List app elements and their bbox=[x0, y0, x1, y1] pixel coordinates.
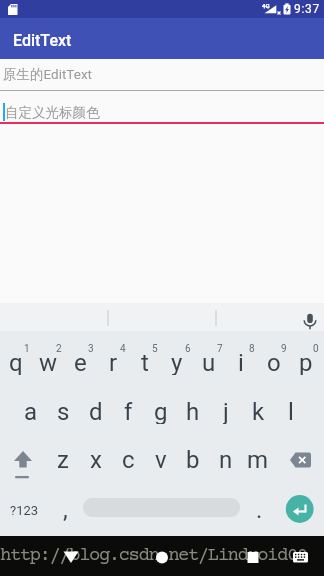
staticText: b bbox=[186, 446, 200, 472]
button[interactable] bbox=[0, 303, 324, 331]
staticText: 6 bbox=[185, 343, 191, 354]
staticText: c bbox=[122, 446, 135, 472]
button[interactable]: s bbox=[43, 398, 83, 424]
button[interactable]: u bbox=[189, 349, 229, 375]
button[interactable]: i bbox=[221, 349, 261, 375]
button[interactable]: d bbox=[76, 398, 116, 424]
staticText: r bbox=[109, 349, 118, 375]
button[interactable]: k bbox=[238, 398, 278, 424]
button[interactable]: , bbox=[45, 496, 85, 522]
staticText: p bbox=[299, 349, 313, 375]
staticText: x bbox=[90, 446, 102, 472]
staticText: l bbox=[288, 398, 294, 424]
staticText: v bbox=[155, 446, 167, 472]
staticText: q bbox=[9, 349, 23, 375]
button[interactable]: ?123 bbox=[4, 497, 44, 523]
button[interactable]: x bbox=[76, 446, 116, 472]
staticText: 0 bbox=[313, 343, 319, 354]
button[interactable]: y bbox=[157, 349, 197, 375]
staticText: i bbox=[238, 349, 244, 375]
staticText: k bbox=[252, 398, 265, 424]
staticText: h bbox=[186, 398, 200, 424]
button[interactable]: c bbox=[108, 446, 148, 472]
staticText: 2 bbox=[56, 343, 62, 354]
button[interactable]: v bbox=[141, 446, 181, 472]
button[interactable] bbox=[108, 536, 216, 576]
staticText: e bbox=[74, 349, 87, 375]
button[interactable] bbox=[0, 536, 108, 576]
staticText: 7 bbox=[217, 343, 223, 354]
button[interactable]: p bbox=[286, 349, 324, 375]
button[interactable] bbox=[216, 536, 324, 576]
staticText: EditText bbox=[13, 31, 72, 50]
button[interactable]: . bbox=[239, 496, 279, 522]
staticText: , bbox=[63, 496, 68, 522]
button[interactable]: e bbox=[60, 349, 100, 375]
button[interactable]: a bbox=[11, 398, 51, 424]
staticText: n bbox=[219, 446, 233, 472]
button[interactable]: n bbox=[206, 446, 246, 472]
staticText: 3 bbox=[88, 343, 94, 354]
staticText: j bbox=[223, 398, 229, 424]
button[interactable]: l bbox=[271, 398, 311, 424]
button[interactable]: q bbox=[0, 349, 36, 375]
staticText: . bbox=[256, 496, 263, 522]
button[interactable]: b bbox=[173, 446, 213, 472]
staticText: y bbox=[171, 349, 183, 375]
button[interactable]: f bbox=[108, 398, 148, 424]
staticText: z bbox=[57, 446, 69, 472]
staticText: a bbox=[24, 398, 38, 424]
button[interactable]: o bbox=[254, 349, 294, 375]
button[interactable]: g bbox=[141, 398, 181, 424]
staticText: s bbox=[57, 398, 70, 424]
staticText: d bbox=[89, 398, 103, 424]
staticText: g bbox=[154, 398, 168, 424]
button[interactable]: m bbox=[238, 446, 278, 472]
staticText: 1 bbox=[24, 343, 30, 354]
button[interactable]: r bbox=[93, 349, 133, 375]
button[interactable]: 自定义光标颜色 bbox=[0, 96, 324, 128]
staticText: f bbox=[124, 398, 133, 424]
button[interactable]: w bbox=[28, 349, 68, 375]
staticText: 4G bbox=[262, 2, 270, 9]
staticText: 自定义光标颜色 bbox=[5, 104, 100, 121]
staticText: 8 bbox=[249, 343, 255, 354]
staticText: u bbox=[202, 349, 216, 375]
staticText: 4 bbox=[120, 343, 126, 354]
staticText: 5 bbox=[152, 343, 158, 354]
staticText: 9 bbox=[281, 343, 287, 354]
staticText: 9:37 bbox=[294, 2, 320, 16]
button[interactable]: z bbox=[43, 446, 83, 472]
staticText: http://blog.csdn.net/Lindroid00 bbox=[0, 545, 307, 566]
button[interactable]: t bbox=[125, 349, 165, 375]
staticText: t bbox=[141, 349, 149, 375]
staticText: 原生的EditText bbox=[3, 66, 93, 83]
button[interactable]: j bbox=[206, 398, 246, 424]
staticText: w bbox=[39, 349, 58, 375]
staticText: ?123 bbox=[10, 503, 39, 518]
button[interactable]: h bbox=[173, 398, 213, 424]
staticText: o bbox=[267, 349, 281, 375]
button[interactable]: 原生的EditText bbox=[0, 58, 324, 90]
staticText: m bbox=[247, 446, 269, 472]
